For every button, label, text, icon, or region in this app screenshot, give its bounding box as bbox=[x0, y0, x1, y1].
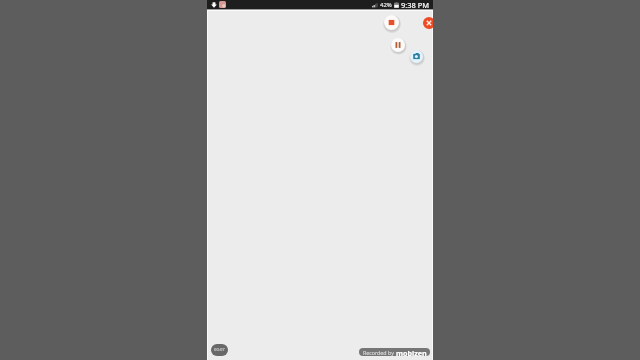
button[interactable]: Pause recording bbox=[391, 38, 405, 52]
button[interactable]: Recorded by Mobizen bbox=[359, 348, 430, 356]
button[interactable]: Stop recording bbox=[384, 15, 399, 30]
staticText: mobizen bbox=[396, 348, 427, 356]
button[interactable]: Close overlay bbox=[423, 17, 433, 29]
staticText: 9:38 PM bbox=[401, 0, 430, 9]
staticText: 42% bbox=[380, 1, 392, 9]
staticText: 00:07 bbox=[214, 347, 225, 353]
staticText: Recorded by bbox=[363, 349, 396, 356]
button[interactable]: Recording timer bbox=[211, 344, 228, 356]
button[interactable]: Take screenshot bbox=[410, 50, 423, 63]
